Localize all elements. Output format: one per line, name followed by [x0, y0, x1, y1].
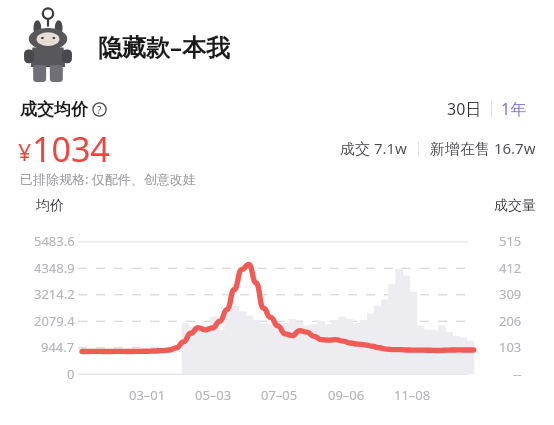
staticText: 4348.9	[34, 259, 75, 277]
staticText: 515	[499, 232, 522, 250]
staticText: 5483.6	[34, 232, 75, 250]
button[interactable]: 成交均价	[20, 99, 107, 120]
staticText: 均价	[36, 197, 64, 215]
staticText: 新增在售 16.7w	[430, 138, 536, 158]
staticText: 2079.4	[34, 312, 75, 330]
staticText: 309	[499, 285, 522, 303]
staticText: 412	[499, 259, 522, 277]
staticText: 03–01	[129, 386, 166, 404]
staticText: 隐藏款–本我	[98, 30, 230, 63]
staticText: 3214.2	[34, 285, 75, 303]
staticText: 103	[499, 338, 522, 356]
staticText: 07–05	[261, 386, 298, 404]
staticText: 30日	[447, 98, 482, 120]
staticText: ¥	[18, 136, 32, 167]
staticText: 1年	[501, 98, 527, 120]
staticText: 成交 7.1w	[340, 138, 407, 158]
staticText: 944.7	[41, 338, 75, 356]
staticText: 成交均价	[20, 99, 88, 120]
staticText: 11–08	[394, 386, 431, 404]
staticText: 09–06	[328, 386, 365, 404]
other: 说明	[92, 102, 107, 117]
staticText: 206	[499, 312, 522, 330]
staticText: 05–03	[195, 386, 232, 404]
staticText: 0	[67, 365, 75, 383]
staticText: 成交量	[494, 197, 536, 215]
staticText: ?	[97, 103, 102, 117]
button[interactable]: 隐藏款–本我	[0, 0, 554, 92]
staticText: 1034	[32, 126, 110, 170]
button[interactable]: 1年	[492, 93, 536, 125]
staticText: --	[513, 365, 522, 383]
button[interactable]: 30日	[438, 93, 491, 125]
staticText: 已排除规格: 仅配件、创意改娃	[20, 170, 196, 188]
